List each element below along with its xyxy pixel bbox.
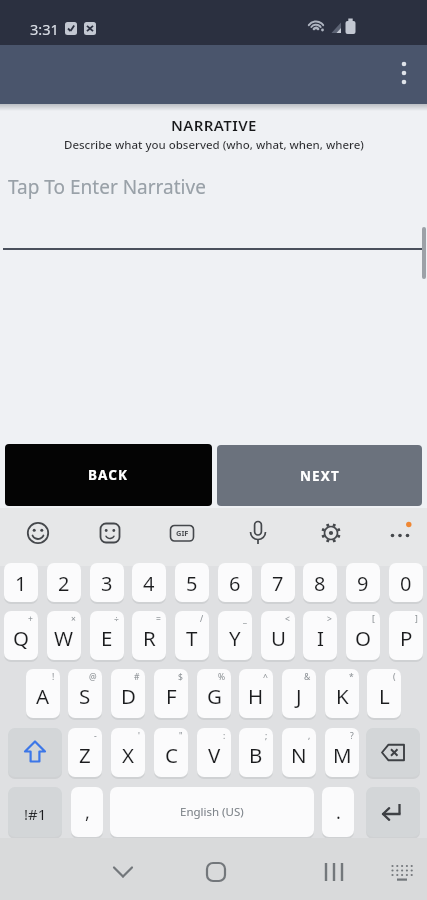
staticText: D — [121, 682, 136, 710]
button[interactable]: O — [346, 611, 380, 660]
button[interactable] — [18, 513, 58, 553]
staticText: " — [179, 730, 183, 742]
button[interactable]: P — [389, 611, 423, 660]
button[interactable]: U — [261, 611, 295, 660]
staticText: V — [208, 741, 221, 769]
button[interactable]: 5 — [175, 563, 209, 602]
button[interactable]: 9 — [346, 563, 380, 602]
button[interactable] — [8, 728, 62, 777]
staticText: 1 — [15, 570, 27, 597]
staticText: L — [379, 682, 390, 710]
staticText: # — [134, 671, 140, 683]
button[interactable]: T — [175, 611, 209, 660]
button[interactable]: A — [26, 669, 60, 718]
button[interactable] — [311, 513, 351, 553]
button[interactable]: L — [367, 669, 401, 718]
staticText: < — [285, 613, 290, 625]
button[interactable]: G — [197, 669, 231, 718]
button[interactable]: Q — [4, 611, 38, 660]
button[interactable]: S — [68, 669, 102, 718]
staticText: W — [54, 624, 74, 652]
staticText: E — [101, 624, 113, 652]
button[interactable] — [366, 728, 420, 777]
staticText: 3:31 — [30, 19, 59, 39]
button[interactable]: H — [239, 669, 273, 718]
staticText: A — [36, 682, 50, 710]
button[interactable]: 1 — [4, 563, 38, 602]
button[interactable] — [384, 50, 424, 94]
button[interactable]: !#1 — [8, 787, 62, 837]
button[interactable]: D — [111, 669, 145, 718]
button[interactable]: 7 — [261, 563, 295, 602]
button[interactable]: 3 — [90, 563, 124, 602]
button[interactable]: K — [325, 669, 359, 718]
button[interactable]: Y — [218, 611, 252, 660]
staticText: 9 — [357, 570, 369, 597]
staticText: ! — [52, 671, 55, 683]
button[interactable]: , — [71, 787, 103, 837]
button[interactable]: F — [154, 669, 188, 718]
staticText: J — [296, 682, 302, 710]
staticText: & — [304, 671, 311, 683]
button[interactable]: BACK — [5, 444, 212, 506]
staticText: NARRATIVE — [171, 115, 257, 135]
button[interactable]: 2 — [47, 563, 81, 602]
staticText: 6 — [229, 570, 241, 597]
staticText: X — [122, 741, 135, 769]
button[interactable]: 8 — [303, 563, 337, 602]
button[interactable]: Z — [68, 728, 102, 777]
button[interactable]: M — [325, 728, 359, 777]
staticText: [ — [372, 613, 375, 625]
button[interactable]: C — [154, 728, 188, 777]
button[interactable]: 0 — [389, 563, 423, 602]
staticText: H — [248, 682, 264, 710]
staticText: K — [336, 682, 349, 710]
button[interactable]: NEXT — [217, 445, 422, 506]
button[interactable]: W — [47, 611, 81, 660]
button[interactable]: N — [282, 728, 316, 777]
staticText: English (US) — [180, 804, 244, 820]
button[interactable]: I — [303, 611, 337, 660]
button[interactable]: . — [322, 787, 354, 837]
staticText: G — [207, 682, 222, 710]
staticText: 0 — [400, 570, 412, 597]
button[interactable] — [90, 513, 130, 553]
staticText: M — [333, 741, 352, 769]
staticText: 3 — [101, 570, 113, 597]
staticText: Z — [79, 741, 91, 769]
button[interactable] — [382, 852, 422, 892]
staticText: ? — [350, 730, 354, 742]
staticText: S — [79, 682, 91, 710]
button[interactable] — [366, 787, 420, 837]
staticText: % — [218, 671, 226, 683]
button[interactable]: English (US) — [110, 787, 314, 837]
staticText: N — [291, 741, 307, 769]
staticText: = — [156, 613, 161, 625]
staticText: Q — [13, 624, 30, 652]
staticText: ÷ — [114, 613, 119, 625]
staticText: 5 — [186, 570, 198, 597]
button[interactable]: X — [111, 728, 145, 777]
button[interactable] — [380, 513, 420, 553]
button[interactable]: 4 — [132, 563, 166, 602]
staticText: _ — [243, 613, 247, 625]
staticText: T — [186, 624, 198, 652]
staticText: GIF — [176, 528, 189, 538]
staticText: 2 — [58, 570, 70, 597]
button[interactable]: R — [132, 611, 166, 660]
staticText: 8 — [314, 570, 326, 597]
staticText: ^ — [263, 671, 268, 683]
button[interactable]: Tap To Enter Narrative — [0, 160, 427, 250]
button[interactable] — [238, 513, 278, 553]
button[interactable] — [196, 852, 236, 892]
staticText: , — [85, 800, 90, 825]
staticText: F — [166, 682, 177, 710]
button[interactable]: E — [90, 611, 124, 660]
button[interactable] — [103, 852, 143, 892]
button[interactable] — [314, 852, 354, 892]
button[interactable]: V — [197, 728, 231, 777]
button[interactable]: B — [239, 728, 273, 777]
button[interactable]: J — [282, 669, 316, 718]
button[interactable]: 6 — [218, 563, 252, 602]
button[interactable]: GIF — [162, 513, 202, 553]
